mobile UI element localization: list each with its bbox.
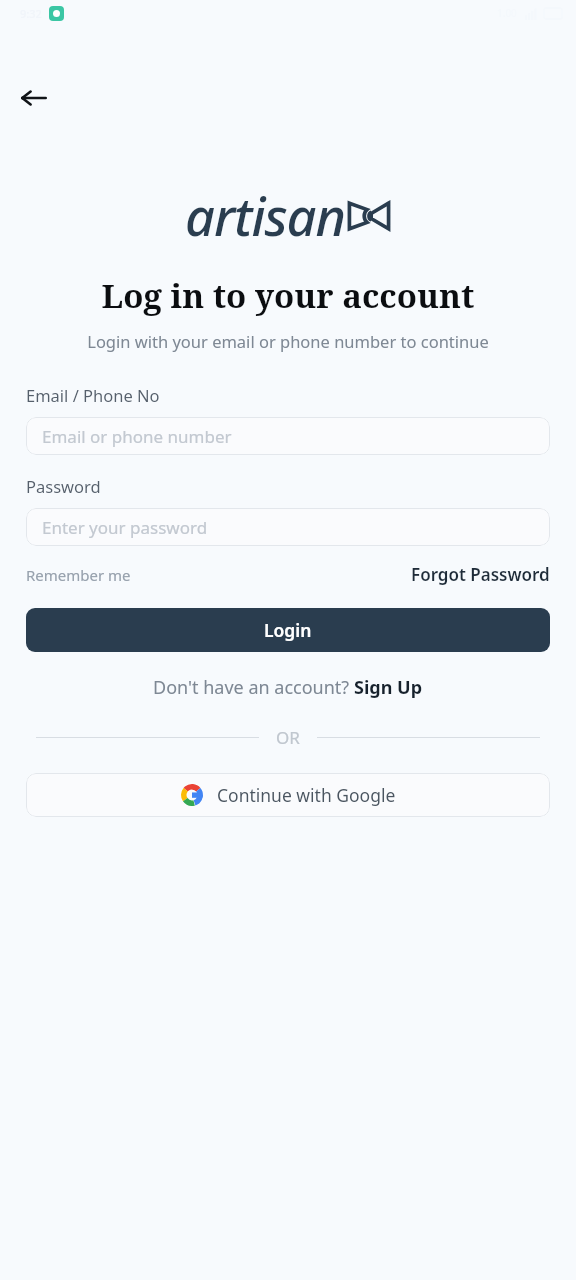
- staticText: Log in to your account: [0, 273, 576, 318]
- button[interactable]: Remember me: [26, 565, 131, 585]
- staticText: artisan: [185, 180, 345, 251]
- staticText: Continue with Google: [217, 783, 396, 807]
- staticText: Email / Phone No: [26, 384, 160, 406]
- staticText: Email or phone number: [42, 425, 232, 448]
- button[interactable]: Email or phone number: [26, 417, 550, 455]
- staticText: Sign Up: [354, 675, 423, 700]
- button[interactable]: Continue with Google: [26, 773, 550, 817]
- button[interactable]: Sign Up: [354, 675, 423, 700]
- button[interactable]: Enter your password: [26, 508, 550, 546]
- staticText: Login: [264, 618, 312, 642]
- staticText: Password: [26, 475, 101, 497]
- staticText: Don't have an account?: [153, 675, 354, 700]
- staticText: Remember me: [26, 565, 131, 585]
- button[interactable]: Back: [10, 74, 58, 122]
- staticText: Enter your password: [42, 516, 208, 539]
- staticText: Login with your email or phone number to…: [12, 330, 564, 352]
- button[interactable]: Login: [26, 608, 550, 652]
- button[interactable]: Forgot Password: [411, 563, 550, 586]
- staticText: OR: [276, 726, 300, 749]
- staticText: Forgot Password: [411, 563, 550, 586]
